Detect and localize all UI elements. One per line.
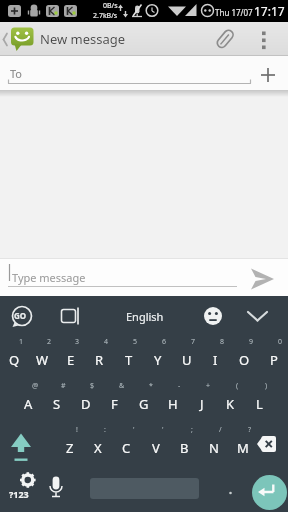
staticText: 2	[47, 337, 52, 347]
staticText: I	[213, 351, 218, 369]
staticText: W	[36, 351, 49, 369]
staticText: O	[239, 351, 250, 369]
staticText: Thu 17/07	[215, 7, 253, 18]
staticText: 4	[104, 337, 109, 347]
staticText: S	[53, 395, 61, 413]
staticText: New message	[40, 30, 126, 48]
staticText: 2.7kB/s	[93, 11, 118, 21]
staticText: R	[95, 351, 104, 369]
staticText: To	[10, 66, 23, 81]
staticText: English	[126, 309, 164, 324]
button[interactable]	[254, 56, 288, 90]
button[interactable]: G	[129, 380, 158, 424]
staticText: T	[125, 351, 133, 369]
staticText: 0	[278, 337, 283, 347]
staticText: GO	[14, 310, 27, 321]
button[interactable]: C	[112, 424, 141, 468]
staticText: Q	[9, 351, 20, 369]
staticText: Type message	[12, 270, 86, 285]
button[interactable]: A	[14, 380, 42, 424]
button[interactable]	[199, 302, 227, 330]
staticText: &	[119, 381, 125, 391]
button[interactable]	[262, 26, 288, 52]
staticText: 5	[133, 337, 138, 347]
button[interactable]	[252, 475, 287, 510]
staticText: (	[236, 381, 239, 391]
button[interactable]: Q	[0, 336, 28, 380]
button[interactable]: U	[172, 336, 201, 380]
staticText: D	[81, 395, 91, 413]
button[interactable]: English	[105, 296, 185, 336]
button[interactable]	[257, 424, 288, 468]
staticText: !	[76, 425, 78, 435]
button[interactable]	[218, 24, 248, 54]
staticText: E	[67, 351, 75, 369]
staticText: :	[104, 425, 106, 435]
staticText: X	[94, 439, 102, 457]
button[interactable]	[46, 470, 70, 510]
staticText: @	[32, 381, 39, 391]
button[interactable]: H	[158, 380, 187, 424]
staticText: 6	[162, 337, 167, 347]
staticText: 17:17	[254, 3, 285, 19]
staticText: $	[90, 381, 95, 391]
button[interactable]: O	[230, 336, 259, 380]
button[interactable]: I	[201, 336, 230, 380]
button[interactable]: T	[114, 336, 143, 380]
staticText: 0B/s	[103, 1, 118, 11]
button[interactable]: Z	[56, 424, 84, 468]
staticText: U	[182, 351, 192, 369]
staticText: Y	[154, 351, 162, 369]
staticText: /	[219, 425, 222, 435]
button[interactable]: M	[228, 424, 257, 468]
button[interactable]	[250, 258, 288, 296]
button[interactable]	[243, 302, 271, 330]
staticText: H	[168, 395, 178, 413]
staticText: P	[270, 351, 278, 369]
button[interactable]: J	[187, 380, 216, 424]
button[interactable]: V	[141, 424, 170, 468]
staticText: '	[133, 425, 135, 435]
staticText: ?	[248, 425, 252, 435]
staticText: Z	[66, 439, 74, 457]
button[interactable]: K	[216, 380, 245, 424]
button[interactable]	[56, 302, 84, 330]
button[interactable]: R	[85, 336, 114, 380]
staticText: *	[149, 381, 153, 391]
staticText: 8	[220, 337, 225, 347]
staticText: K	[226, 395, 235, 413]
staticText: 9	[249, 337, 254, 347]
button[interactable]: F	[100, 380, 129, 424]
button[interactable]: B	[170, 424, 199, 468]
staticText: L	[256, 395, 263, 413]
staticText: #	[61, 381, 66, 391]
button[interactable]: L	[245, 380, 274, 424]
staticText: 7	[191, 337, 196, 347]
button[interactable]: P	[259, 336, 288, 380]
staticText: V	[152, 439, 160, 457]
button[interactable]	[8, 302, 36, 330]
staticText: ?123	[9, 488, 29, 500]
staticText: '	[162, 425, 164, 435]
staticText: )	[265, 381, 268, 391]
staticText: +	[206, 381, 211, 391]
button[interactable]: W	[28, 336, 56, 380]
button[interactable]: N	[199, 424, 228, 468]
staticText: J	[200, 395, 204, 413]
button[interactable]: S	[42, 380, 71, 424]
staticText: ;	[191, 425, 193, 435]
button[interactable]: E	[56, 336, 85, 380]
staticText: -	[178, 381, 181, 391]
staticText: A	[24, 395, 33, 413]
staticText: B	[180, 439, 189, 457]
button[interactable]	[6, 470, 44, 510]
staticText: F	[111, 395, 118, 413]
button[interactable]: Y	[143, 336, 172, 380]
button[interactable]	[0, 424, 56, 468]
button[interactable]: D	[71, 380, 100, 424]
staticText: 1	[19, 337, 24, 347]
staticText: G	[139, 395, 149, 413]
button[interactable]: X	[84, 424, 112, 468]
staticText: N	[209, 439, 219, 457]
